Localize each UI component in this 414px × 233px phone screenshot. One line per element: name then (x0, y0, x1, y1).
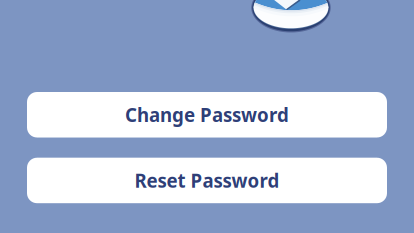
button[interactable]: Change Password (27, 92, 387, 137)
staticText: Change Password (125, 102, 289, 127)
button[interactable]: Reset Password (27, 158, 387, 203)
staticText: Reset Password (134, 168, 279, 193)
